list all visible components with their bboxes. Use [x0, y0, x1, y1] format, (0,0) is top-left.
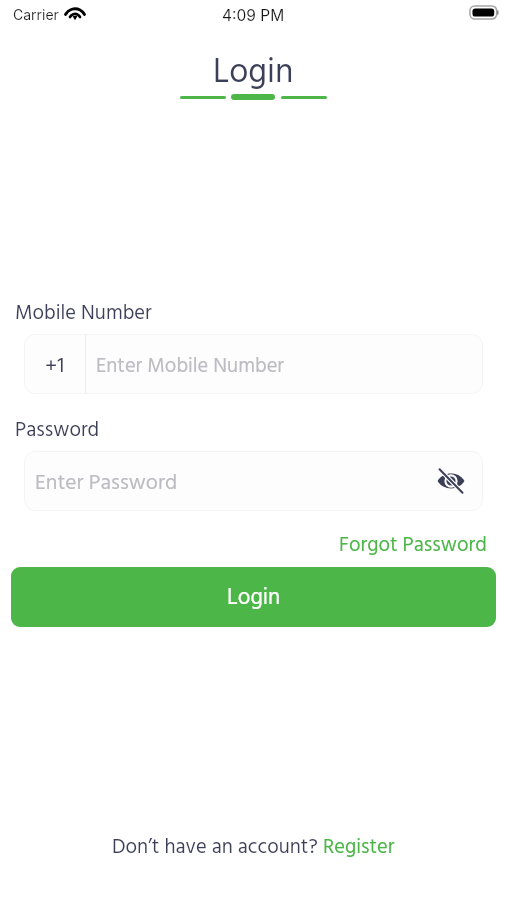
button[interactable]: +1: [24, 334, 483, 394]
staticText: Password: [15, 414, 100, 447]
staticText: +1: [45, 349, 65, 384]
staticText: 4:09 PM: [222, 6, 285, 25]
button[interactable]: Enter Password: [24, 451, 483, 511]
staticText: Forgot Password: [339, 529, 487, 562]
staticText: Carrier: [13, 6, 59, 23]
staticText: Login: [213, 46, 294, 100]
staticText: Login: [227, 580, 281, 616]
staticText: Mobile Number: [15, 297, 152, 330]
staticText: Enter Mobile Number: [96, 350, 285, 383]
staticText: Don’t have an account?: [112, 831, 323, 864]
staticText: Enter Password: [35, 466, 178, 500]
button[interactable]: Show password: [428, 458, 474, 504]
button[interactable]: Forgot Password: [339, 529, 487, 562]
button[interactable]: Register: [323, 831, 395, 864]
button[interactable]: Login: [11, 567, 496, 627]
staticText: Register: [323, 831, 395, 864]
